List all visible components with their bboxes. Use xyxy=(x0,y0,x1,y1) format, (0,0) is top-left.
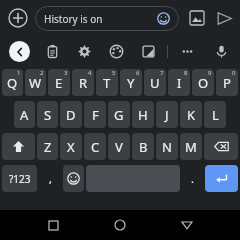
button[interactable]: A xyxy=(14,101,35,128)
button[interactable]: Add xyxy=(5,5,31,31)
button[interactable]: S xyxy=(37,101,58,128)
button[interactable]: N xyxy=(156,133,178,160)
staticText: 1 xyxy=(17,69,21,77)
staticText: , xyxy=(49,171,52,186)
button[interactable]: Recents xyxy=(39,211,67,239)
button[interactable]: T xyxy=(96,69,118,96)
button[interactable]: Y xyxy=(120,69,142,96)
staticText: C xyxy=(91,138,100,156)
button[interactable]: K xyxy=(180,101,202,128)
staticText: R xyxy=(79,74,88,92)
staticText: K xyxy=(187,106,196,124)
staticText: D xyxy=(66,106,76,124)
button[interactable]: X xyxy=(60,133,82,160)
button[interactable]: R xyxy=(72,69,94,96)
staticText: F xyxy=(92,106,99,124)
button[interactable]: Shift xyxy=(2,133,35,160)
staticText: B xyxy=(139,138,148,156)
staticText: 2 xyxy=(40,69,44,77)
button[interactable]: Clipboard xyxy=(42,41,62,61)
button[interactable]: Emoji xyxy=(63,165,84,192)
staticText: G xyxy=(114,106,124,124)
button[interactable]: Home xyxy=(106,211,134,239)
staticText: N xyxy=(162,138,172,156)
button[interactable]: Themes xyxy=(106,41,126,61)
staticText: 8 xyxy=(184,69,188,77)
button[interactable]: Voice input xyxy=(211,41,231,61)
button[interactable]: H xyxy=(132,101,154,128)
staticText: S xyxy=(44,106,52,124)
button[interactable]: G xyxy=(108,101,130,128)
button[interactable]: O xyxy=(192,69,214,96)
staticText: O xyxy=(198,74,209,92)
staticText: A xyxy=(20,106,29,124)
staticText: 4 xyxy=(88,69,92,77)
button[interactable]: Enter xyxy=(205,165,238,192)
button[interactable]: Z xyxy=(37,133,58,160)
button[interactable]: L xyxy=(204,101,226,128)
button[interactable]: E xyxy=(48,69,70,96)
button[interactable]: Settings xyxy=(74,41,94,61)
button[interactable]: History is on xyxy=(35,6,179,31)
button[interactable]: Backspace xyxy=(204,133,238,160)
button[interactable]: B xyxy=(132,133,154,160)
staticText: 0 xyxy=(232,69,236,77)
button[interactable]: Image xyxy=(185,6,209,30)
button[interactable]: U xyxy=(144,69,166,96)
button[interactable]: Send xyxy=(211,5,237,31)
staticText: V xyxy=(115,138,123,156)
staticText: U xyxy=(150,74,160,92)
staticText: ?123 xyxy=(9,172,31,186)
button[interactable]: M xyxy=(180,133,202,160)
button[interactable]: More options xyxy=(177,41,197,61)
button[interactable]: D xyxy=(60,101,82,128)
staticText: J xyxy=(165,106,169,124)
staticText: Y xyxy=(127,74,135,92)
staticText: P xyxy=(223,74,231,92)
button[interactable]: I xyxy=(168,69,190,96)
staticText: 3 xyxy=(64,69,68,77)
button[interactable]: Period xyxy=(182,165,203,192)
button[interactable]: ?123 xyxy=(2,165,37,192)
button[interactable]: V xyxy=(108,133,130,160)
staticText: Z xyxy=(44,138,52,156)
staticText: L xyxy=(212,106,219,124)
button[interactable]: Comma xyxy=(39,165,61,192)
button[interactable]: F xyxy=(84,101,106,128)
staticText: M xyxy=(185,138,197,156)
staticText: W xyxy=(29,74,42,92)
button[interactable]: Back xyxy=(9,41,30,62)
staticText: . xyxy=(191,171,194,186)
button[interactable]: W xyxy=(25,69,46,96)
staticText: Q xyxy=(7,74,18,92)
button[interactable]: Resize keyboard xyxy=(138,41,158,61)
staticText: 5 xyxy=(112,69,116,77)
button[interactable]: Q xyxy=(2,69,23,96)
button[interactable]: Back xyxy=(173,211,201,239)
button[interactable]: P xyxy=(216,69,238,96)
staticText: 6 xyxy=(136,69,140,77)
staticText: H xyxy=(138,106,148,124)
staticText: 9 xyxy=(208,69,212,77)
button[interactable]: C xyxy=(84,133,106,160)
staticText: 7 xyxy=(160,69,164,77)
staticText: I xyxy=(177,74,182,92)
button[interactable]: J xyxy=(156,101,178,128)
staticText: E xyxy=(55,74,63,92)
staticText: T xyxy=(103,74,111,92)
staticText: X xyxy=(67,138,75,156)
staticText: History is on xyxy=(44,12,103,26)
